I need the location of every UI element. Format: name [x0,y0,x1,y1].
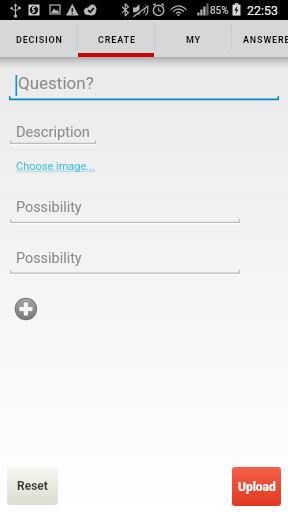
button[interactable]: CREATE [78,24,155,57]
staticText: Possibility [16,199,82,216]
staticText: DECISION [16,35,63,46]
staticText: 85% [210,5,229,17]
button[interactable]: Add possibility [14,297,38,321]
staticText: MY [186,35,201,46]
button[interactable]: ANSWERED [232,24,288,57]
staticText: Description [16,123,90,140]
button[interactable]: MY [155,24,232,57]
staticText: Question? [18,73,94,93]
staticText: Choose image... [16,160,96,173]
staticText: CREATE [98,35,136,46]
staticText: ANSWERED [243,35,288,46]
staticText: Reset [17,479,48,493]
staticText: Upload [238,480,276,494]
staticText: 22:53 [247,3,279,18]
button[interactable]: DECISION [1,24,78,57]
button[interactable]: Reset [7,467,58,505]
staticText: Possibility [16,250,82,267]
button[interactable]: Choose image... [16,160,96,173]
button[interactable]: Upload [232,467,281,506]
